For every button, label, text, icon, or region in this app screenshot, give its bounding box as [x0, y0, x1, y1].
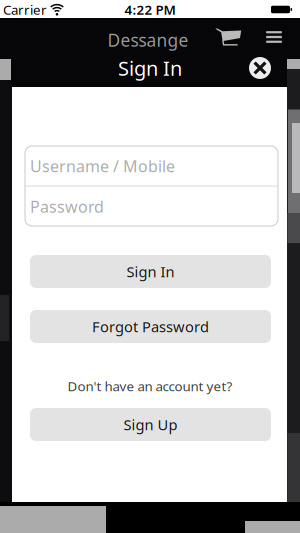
button[interactable]: Menu — [266, 31, 282, 43]
button[interactable]: Forgot Password — [30, 310, 271, 343]
staticText: Sign In — [126, 262, 174, 281]
staticText: Don't have an account yet? — [67, 377, 232, 395]
button[interactable]: Cart — [211, 25, 245, 51]
staticText: 4:22 PM — [124, 1, 175, 18]
button[interactable]: Sign In — [30, 255, 271, 288]
staticText: Forgot Password — [92, 317, 209, 336]
staticText: Dessange — [107, 28, 188, 51]
button[interactable]: Password — [25, 187, 278, 226]
staticText: Carrier — [3, 1, 47, 18]
staticText: Username / Mobile — [30, 155, 175, 177]
button[interactable]: Username / Mobile — [25, 146, 278, 185]
button[interactable]: Sign Up — [30, 408, 271, 441]
staticText: Sign In — [118, 55, 182, 81]
button[interactable]: Close — [249, 57, 271, 79]
staticText: Sign Up — [123, 415, 177, 434]
staticText: Password — [30, 196, 104, 217]
